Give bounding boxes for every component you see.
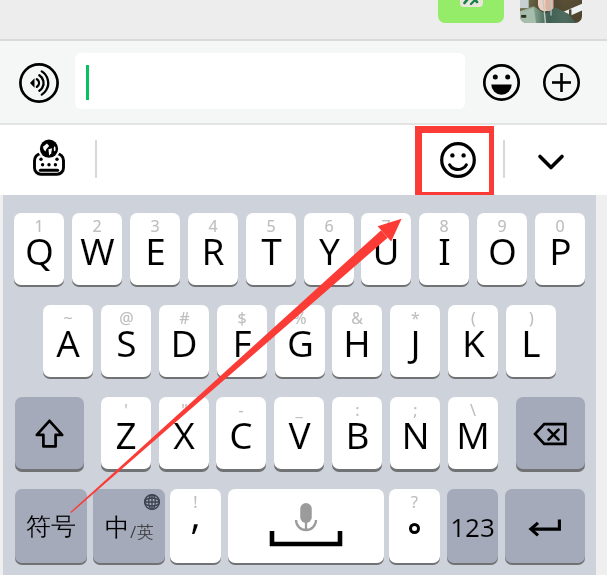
staticText: T <box>261 225 282 275</box>
button[interactable] <box>75 53 465 109</box>
staticText: - <box>238 399 244 421</box>
button[interactable]: % <box>275 305 325 377</box>
button[interactable]: Contact avatar <box>520 0 582 23</box>
button[interactable]: 4 <box>188 213 238 285</box>
staticText: K <box>462 317 485 367</box>
staticText: N <box>401 409 430 459</box>
staticText: 2 <box>92 215 102 237</box>
button[interactable]: ) <box>506 305 556 377</box>
staticText: G <box>287 317 314 367</box>
staticText: # <box>179 307 190 329</box>
staticText: D <box>170 317 198 367</box>
button[interactable]: _ <box>274 397 324 469</box>
button[interactable]: * <box>390 305 440 377</box>
staticText: ~ <box>63 307 73 329</box>
staticText: , <box>190 489 201 540</box>
button[interactable]: 8 <box>419 213 469 285</box>
staticText: Y <box>319 225 340 275</box>
staticText: W <box>80 225 115 275</box>
button[interactable]: Voice input <box>19 63 59 103</box>
staticText: Z <box>115 409 137 459</box>
staticText: ? <box>411 491 418 513</box>
button[interactable]: \ <box>448 397 498 469</box>
button[interactable]: Hide keyboard <box>534 148 568 176</box>
staticText: 0 <box>555 215 565 237</box>
button[interactable] <box>228 489 384 563</box>
button[interactable]: $ <box>217 305 267 377</box>
button[interactable]: Backspace <box>516 397 585 469</box>
staticText: I <box>438 225 451 275</box>
button[interactable]: - <box>216 397 266 469</box>
staticText: ! <box>193 491 198 513</box>
staticText: _ <box>295 399 303 421</box>
button[interactable]: 6 <box>304 213 354 285</box>
staticText: ; <box>413 399 418 421</box>
staticText: $ <box>237 307 247 329</box>
button[interactable]: ~ <box>43 305 93 377</box>
staticText: X <box>173 409 195 459</box>
staticText: @ <box>119 307 134 329</box>
button[interactable]: ' <box>101 397 151 469</box>
staticText: " <box>181 399 188 421</box>
button[interactable]: ( <box>448 305 498 377</box>
button[interactable]: 1 <box>14 213 64 285</box>
staticText: L <box>521 317 541 367</box>
staticText: 英 <box>137 522 154 543</box>
staticText: E <box>145 225 166 275</box>
staticText: F <box>232 317 252 367</box>
button[interactable]: ! <box>170 489 221 563</box>
staticText: 8 <box>439 215 449 237</box>
button[interactable]: Emoji <box>483 64 520 101</box>
staticText: S <box>116 317 137 367</box>
button[interactable]: 9 <box>477 213 527 285</box>
button[interactable]: 符号 <box>15 489 87 563</box>
staticText: ) <box>529 307 534 329</box>
staticText: & <box>351 307 363 329</box>
staticText: A <box>56 317 80 367</box>
staticText: * <box>411 307 420 329</box>
staticText: \ <box>470 399 476 421</box>
button[interactable]: ? <box>389 489 440 563</box>
staticText: B <box>345 409 370 459</box>
staticText: R <box>201 225 225 275</box>
staticText: 3 <box>150 215 160 237</box>
button[interactable]: Enter <box>505 489 585 563</box>
button[interactable]: # <box>159 305 209 377</box>
staticText: 中 <box>105 512 130 543</box>
button[interactable]: 2 <box>72 213 122 285</box>
staticText: H <box>343 317 371 367</box>
button[interactable]: Emoji keyboard <box>415 126 494 197</box>
staticText: 4 <box>208 215 218 237</box>
button[interactable]: & <box>332 305 382 377</box>
button[interactable]: : <box>332 397 382 469</box>
staticText: J <box>410 317 421 367</box>
button[interactable]: " <box>159 397 209 469</box>
staticText: O <box>488 225 517 275</box>
button[interactable]: @ <box>101 305 151 377</box>
button[interactable]: ; <box>390 397 440 469</box>
staticText: ' <box>124 399 128 421</box>
staticText: : <box>355 399 360 421</box>
button[interactable]: 7 <box>361 213 411 285</box>
staticText: 6 <box>324 215 334 237</box>
button[interactable]: 0 <box>535 213 585 285</box>
button[interactable]: Sent sticker message <box>438 0 504 23</box>
button[interactable]: More <box>543 64 580 101</box>
staticText: M <box>456 409 490 459</box>
staticText: / <box>130 520 137 543</box>
staticText: % <box>293 307 307 329</box>
staticText: P <box>549 225 572 275</box>
button[interactable]: 3 <box>130 213 180 285</box>
staticText: 1 <box>34 215 44 237</box>
staticText: Q <box>25 225 54 275</box>
button[interactable]: 中 <box>93 489 165 563</box>
staticText: 5 <box>266 215 276 237</box>
button[interactable]: 5 <box>246 213 296 285</box>
button[interactable]: 123 <box>447 489 498 563</box>
staticText: C <box>229 409 253 459</box>
button[interactable]: Shift <box>15 397 84 469</box>
staticText: V <box>288 409 311 459</box>
staticText: 123 <box>450 509 495 544</box>
button[interactable]: Switch keyboard language <box>33 138 65 175</box>
staticText: 符号 <box>26 511 76 542</box>
